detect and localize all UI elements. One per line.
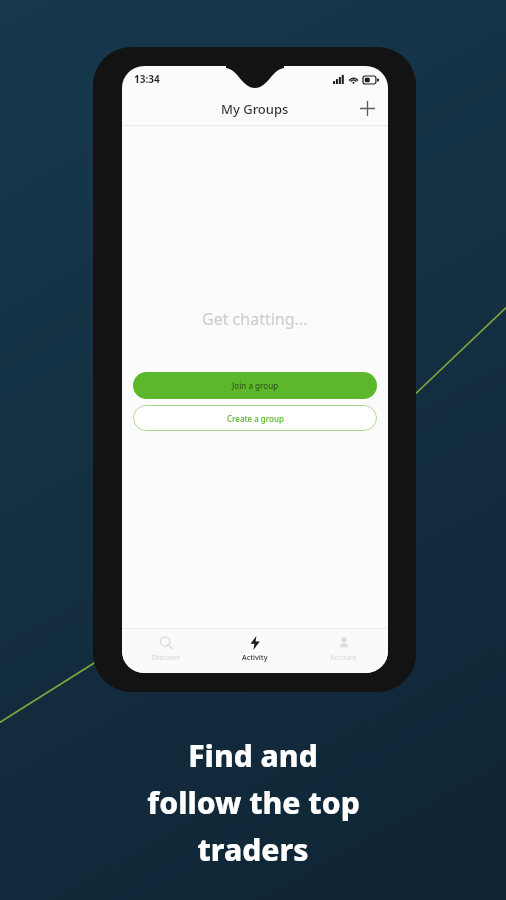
button[interactable]: Create a group <box>133 405 377 431</box>
staticText: Discover <box>152 653 181 663</box>
staticText: Account <box>330 653 357 663</box>
staticText: Get chatting... <box>202 308 308 330</box>
staticText: follow the top <box>147 782 360 823</box>
staticText: My Groups <box>221 100 289 118</box>
button[interactable]: Add group <box>350 92 384 125</box>
staticText: traders <box>197 829 309 870</box>
staticText: Create a group <box>227 413 284 424</box>
button[interactable]: Account <box>299 629 388 673</box>
button[interactable]: Discover <box>122 629 210 673</box>
staticText: Join a group <box>232 380 279 391</box>
button[interactable]: Activity <box>210 629 299 673</box>
button[interactable]: Join a group <box>133 372 377 399</box>
staticText: Find and <box>188 735 318 776</box>
staticText: 13:34 <box>134 72 160 86</box>
staticText: Activity <box>242 653 268 663</box>
